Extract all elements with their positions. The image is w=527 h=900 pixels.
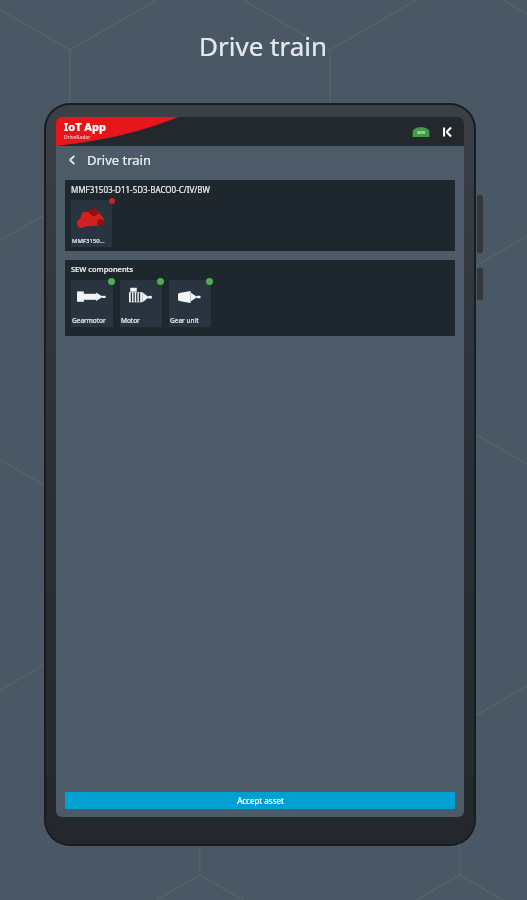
button[interactable]: Motor [120,280,162,327]
staticText: Accept asset [237,795,284,806]
button[interactable]: Gearmotor [71,280,113,327]
staticText: Gear unit [170,316,199,325]
staticText: Motor [121,316,140,325]
button[interactable]: MMF31503-D11-5D3-BACO0-C/IV/BW [65,180,455,251]
staticText: SEW components [71,264,134,274]
staticText: MMF3150... [72,237,105,245]
staticText: SEW [417,130,426,135]
staticText: Gearmotor [72,316,106,325]
button[interactable]: Accept asset [65,792,455,809]
button[interactable]: Drive train [56,147,464,173]
staticText: MMF31503-D11-5D3-BACO0-C/IV/BW [71,184,210,195]
staticText: IoT App [64,119,106,134]
button[interactable]: Gear unit [169,280,211,327]
button[interactable]: MMF3150... [71,200,112,247]
button[interactable]: Menu [440,124,456,140]
button[interactable]: Connection status [411,125,431,139]
staticText: Drive train [87,151,152,169]
staticText: Drive train [199,28,328,63]
staticText: DriveRadar [64,134,91,141]
